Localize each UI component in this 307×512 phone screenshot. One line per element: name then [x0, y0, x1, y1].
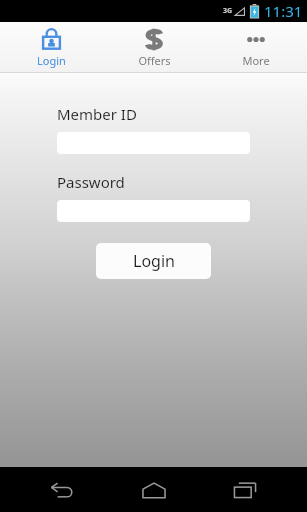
button[interactable]: Back: [40, 470, 84, 510]
other: Login: [41, 28, 62, 50]
button[interactable]: Offers: [103, 22, 205, 72]
staticText: Password: [57, 172, 125, 192]
other: Offers: [143, 28, 165, 51]
button[interactable]: Login: [0, 22, 103, 72]
staticText: Member ID: [57, 104, 137, 124]
button[interactable]: Home: [132, 470, 176, 510]
staticText: 11:31: [264, 1, 303, 21]
other: More: [244, 34, 268, 44]
button[interactable]: Recent apps: [223, 470, 267, 510]
staticText: More: [242, 53, 270, 68]
staticText: Offers: [138, 53, 171, 68]
button[interactable]: Login: [96, 243, 211, 279]
button[interactable]: More: [205, 22, 307, 72]
staticText: Login: [133, 250, 175, 272]
staticText: Login: [37, 53, 66, 68]
staticText: 3G: [223, 6, 233, 16]
